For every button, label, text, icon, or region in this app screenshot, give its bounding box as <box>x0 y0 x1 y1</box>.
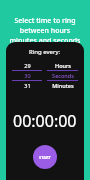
staticText: Ring every: <box>29 48 61 56</box>
staticText: START <box>39 155 51 160</box>
staticText: 30 <box>24 72 31 79</box>
staticText: Seconds <box>52 72 74 79</box>
button[interactable]: 31 <box>12 81 78 90</box>
button[interactable]: 30 <box>12 71 78 80</box>
button[interactable]: START <box>33 145 57 169</box>
staticText: 00:00:00 <box>13 110 77 132</box>
staticText: 29 <box>24 62 31 69</box>
staticText: Select time to ring between hours minute… <box>6 16 84 46</box>
staticText: 31 <box>24 82 31 89</box>
staticText: Minutes <box>52 82 74 89</box>
staticText: Hours <box>55 62 71 69</box>
button[interactable]: 29 <box>12 61 78 70</box>
